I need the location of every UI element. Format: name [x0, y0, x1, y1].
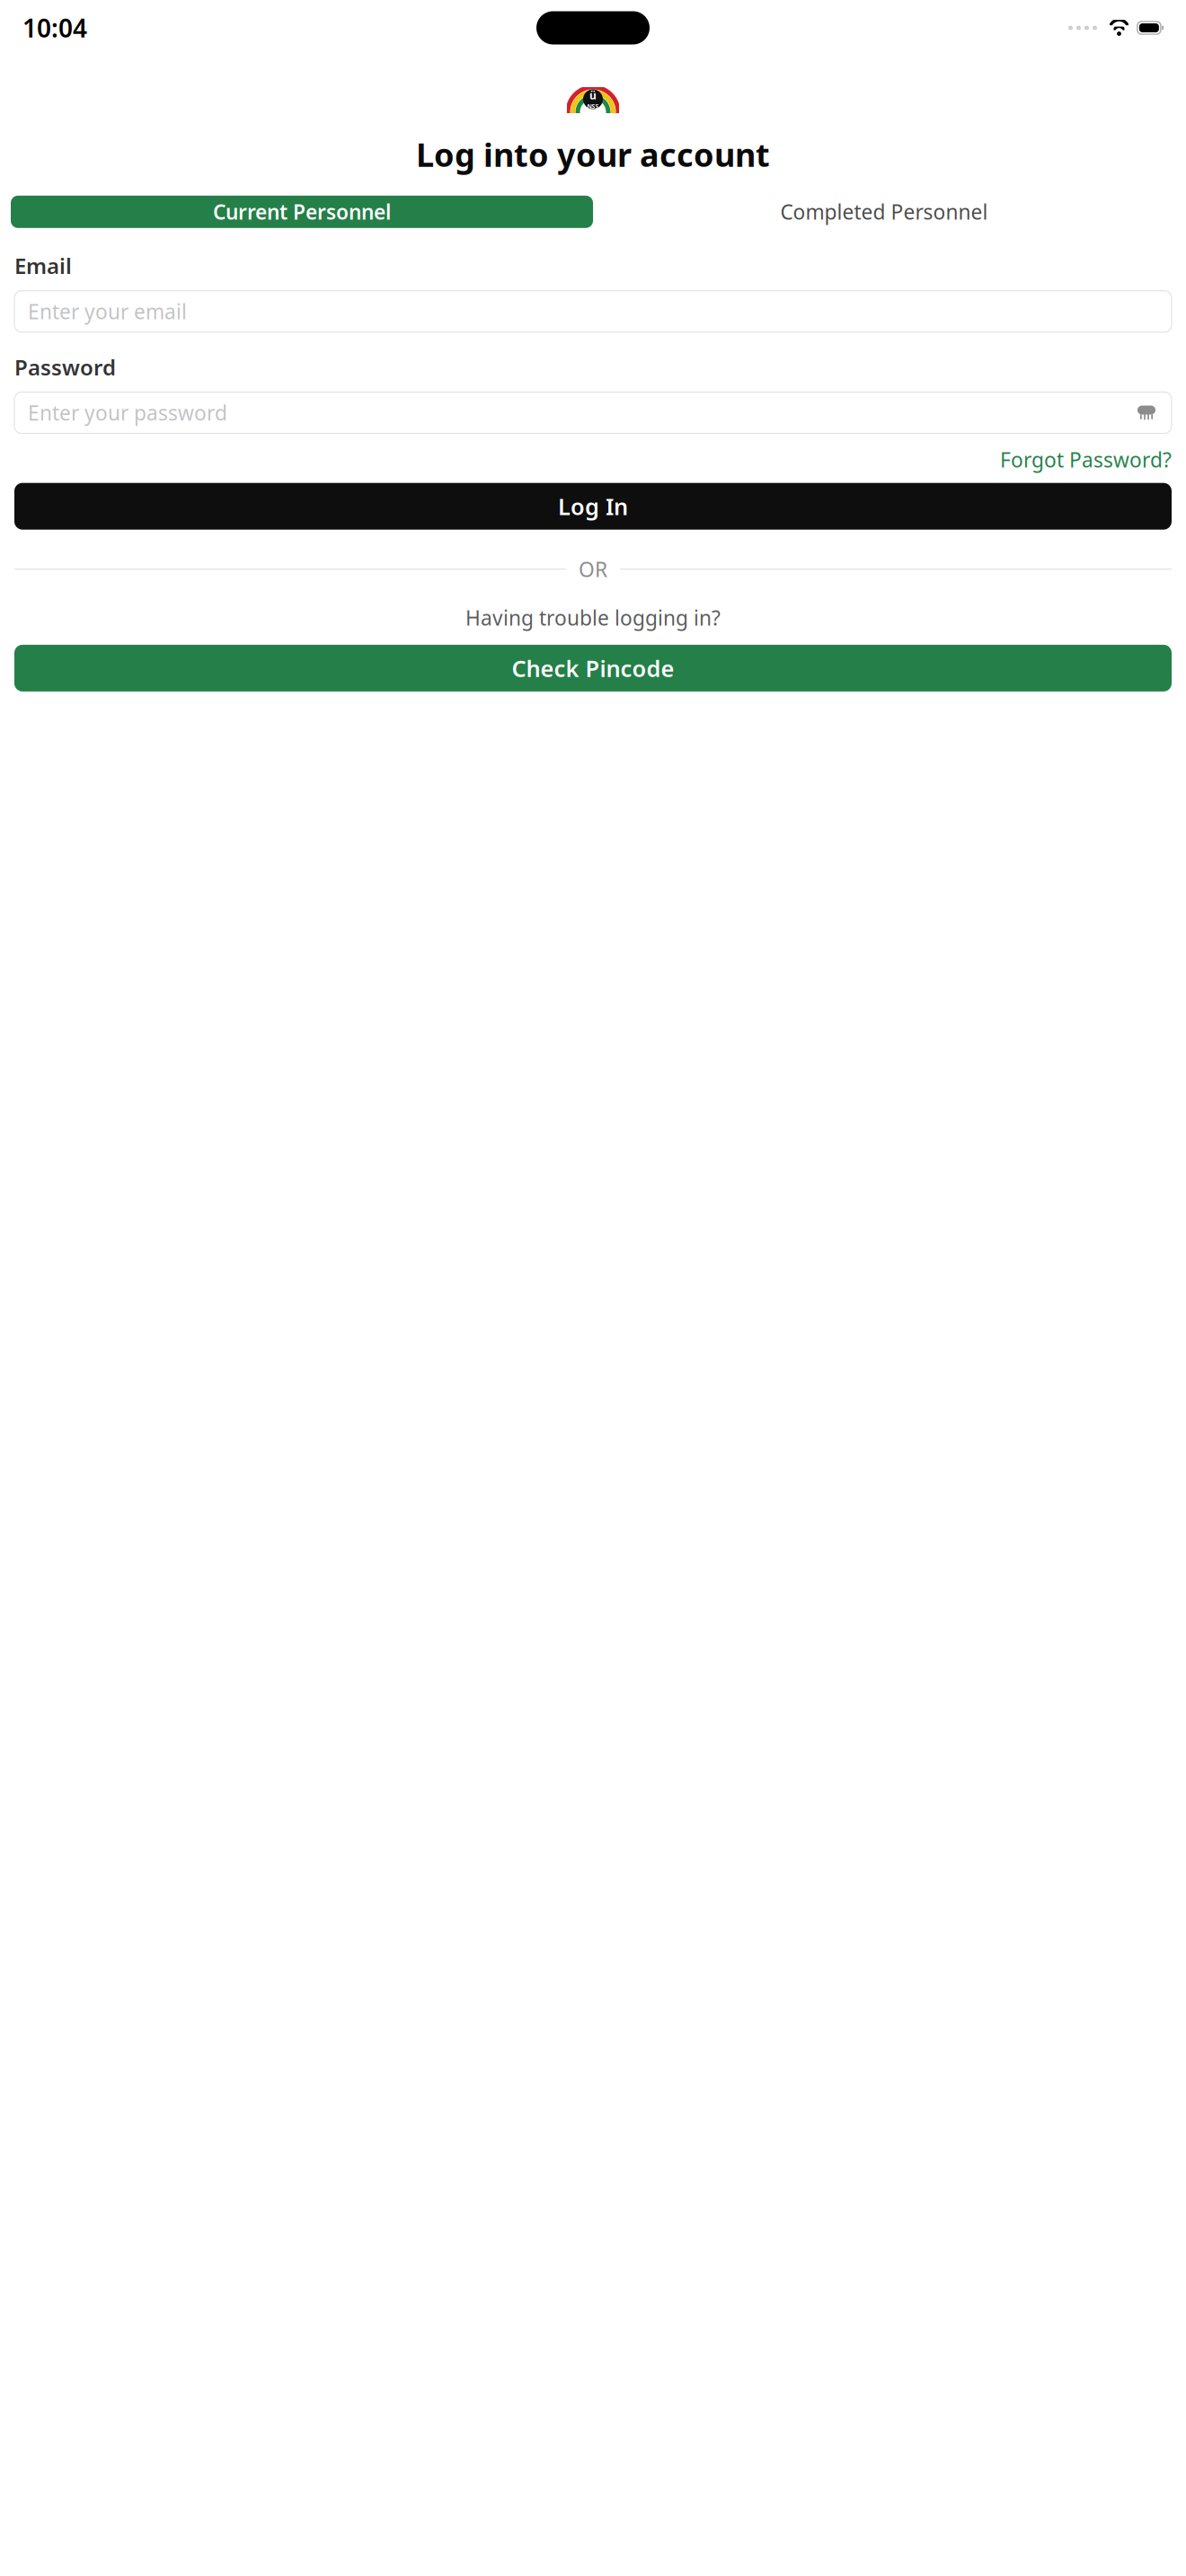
- staticText: Forgot Password?: [1000, 446, 1172, 473]
- staticText: Password: [14, 353, 116, 381]
- staticText: Having trouble logging in?: [465, 604, 721, 631]
- staticText: OR: [579, 556, 607, 583]
- staticText: Enter your password: [28, 399, 227, 426]
- button[interactable]: Show password: [1135, 404, 1158, 422]
- staticText: Email: [14, 251, 72, 280]
- staticText: Log In: [558, 491, 628, 521]
- staticText: Enter your email: [28, 298, 187, 325]
- staticText: ü: [589, 88, 597, 102]
- button[interactable]: Check Pincode: [14, 645, 1172, 692]
- button[interactable]: Forgot Password?: [1000, 446, 1172, 473]
- button[interactable]: Current Personnel: [11, 196, 593, 228]
- staticText: NSS: [587, 102, 599, 110]
- button[interactable]: Completed Personnel: [593, 196, 1175, 228]
- staticText: Completed Personnel: [780, 198, 988, 225]
- button[interactable]: Log In: [14, 483, 1172, 530]
- staticText: Current Personnel: [213, 198, 391, 225]
- staticText: Check Pincode: [512, 653, 674, 683]
- staticText: Log into your account: [416, 133, 770, 176]
- staticText: 10:04: [22, 11, 87, 45]
